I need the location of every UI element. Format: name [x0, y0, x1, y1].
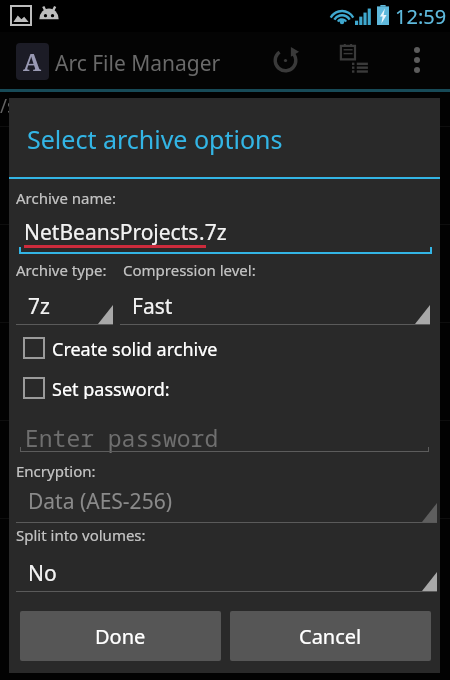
staticText: /storage/emulated/0/NetBeansProjects [0, 93, 350, 119]
staticText: .7z [199, 218, 227, 247]
button[interactable]: Fast [120, 292, 430, 325]
staticText: No [28, 559, 57, 588]
button[interactable]: Refresh [261, 36, 309, 84]
staticText: Create solid archive [52, 337, 218, 359]
button[interactable]: Done [20, 611, 221, 661]
staticText: Enter password [25, 422, 219, 453]
staticText: 7z [28, 292, 50, 321]
button[interactable]: Set password: [24, 377, 170, 399]
staticText: Done [95, 623, 146, 650]
staticText: Archive name: [16, 188, 116, 208]
staticText: Split into volumes: [16, 525, 146, 545]
staticText: NetBeansProjects [24, 218, 199, 247]
staticText: Encryption: [16, 461, 96, 481]
staticText: Fast [132, 292, 173, 321]
button[interactable]: No [16, 559, 437, 592]
button[interactable]: Cancel [230, 611, 431, 661]
button[interactable]: Data (AES-256) [16, 487, 437, 523]
staticText: Compression level: [123, 260, 256, 280]
staticText: 12:59 [395, 3, 447, 30]
staticText: Archive type: [16, 260, 107, 280]
staticText: Select archive options [27, 122, 283, 156]
staticText: Data (AES-256) [28, 487, 172, 516]
staticText: Arc File Manager [55, 49, 221, 78]
staticText: Cancel [299, 623, 362, 650]
button[interactable]: More options [393, 36, 441, 84]
button[interactable]: 7z [16, 292, 113, 325]
staticText: Set password: [52, 377, 170, 399]
staticText: A [23, 45, 42, 78]
button[interactable]: Create solid archive [24, 337, 218, 359]
button[interactable]: View as list [331, 36, 379, 84]
